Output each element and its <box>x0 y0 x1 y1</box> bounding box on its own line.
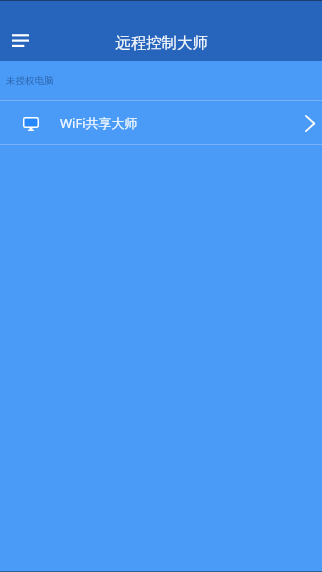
staticText: WiFi共享大师 <box>60 114 138 132</box>
button[interactable]: WiFi共享大师 <box>0 101 322 144</box>
button[interactable]: Open navigation drawer <box>0 20 40 61</box>
staticText: 未授权电脑 <box>6 75 54 87</box>
staticText: 远程控制大师 <box>115 33 208 52</box>
